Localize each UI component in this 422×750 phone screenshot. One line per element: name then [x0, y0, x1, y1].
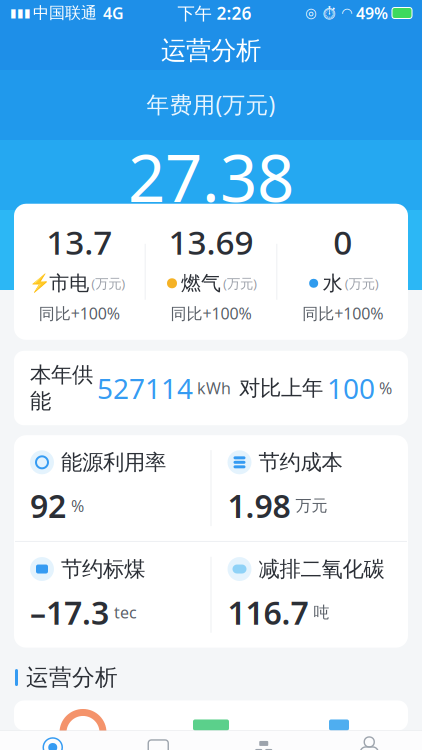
staticText: tec	[114, 602, 137, 623]
staticText: 能源利用率	[61, 449, 166, 475]
staticText: 同比+100%	[39, 303, 120, 324]
staticText: 同比+100%	[170, 303, 251, 324]
button[interactable]: 首页	[0, 731, 105, 750]
staticText: 年费用(万元)	[146, 89, 275, 119]
staticText: 万元	[295, 496, 327, 516]
staticText: 水	[323, 271, 343, 296]
staticText: kWh	[197, 377, 231, 399]
staticText: 116.7	[227, 591, 308, 634]
staticText: 13.7	[46, 220, 112, 264]
staticText: 0	[333, 220, 352, 264]
staticText: ◎	[305, 5, 317, 20]
staticText: 92	[30, 484, 66, 527]
staticText: ▮▮▮	[10, 6, 31, 20]
staticText: 中国联通	[33, 3, 97, 23]
staticText: 市电	[49, 271, 89, 296]
staticText: 100	[327, 369, 375, 407]
staticText: 下午 2:26	[177, 1, 251, 24]
staticText: 1.98	[227, 484, 290, 527]
staticText: 运营分析	[26, 664, 118, 691]
staticText: ⏱	[321, 5, 338, 21]
staticText: 本年供能	[30, 362, 93, 414]
staticText: 燃气	[181, 271, 221, 296]
button[interactable]: 能源供应	[211, 731, 316, 750]
staticText: 对比上年	[239, 375, 323, 401]
staticText: %	[379, 377, 392, 399]
staticText: 运营分析	[161, 35, 261, 66]
staticText: (万元)	[91, 274, 125, 292]
staticText: 节约标煤	[61, 556, 145, 582]
staticText: 同比+100%	[302, 303, 383, 324]
staticText: 527114	[97, 369, 193, 407]
staticText: %	[71, 495, 84, 516]
staticText: 同比上年 + 100%	[135, 243, 286, 270]
button[interactable]: 同比上年 + 100%	[117, 236, 304, 277]
staticText: ⚡	[29, 273, 51, 293]
staticText: 吨	[313, 603, 329, 622]
staticText: –17.3	[30, 591, 109, 634]
staticText: 节约成本	[258, 449, 342, 475]
button[interactable]: 运行成本	[105, 731, 211, 750]
button[interactable]: 我的	[316, 731, 422, 750]
staticText: (万元)	[345, 274, 379, 292]
staticText: 4G	[103, 2, 124, 24]
staticText: 49%	[356, 2, 388, 24]
staticText: 减排二氧化碳	[258, 556, 384, 582]
staticText: ◠	[342, 5, 352, 20]
staticText: 27.38	[128, 133, 294, 220]
staticText: (万元)	[223, 274, 257, 292]
staticText: 13.69	[168, 220, 253, 264]
